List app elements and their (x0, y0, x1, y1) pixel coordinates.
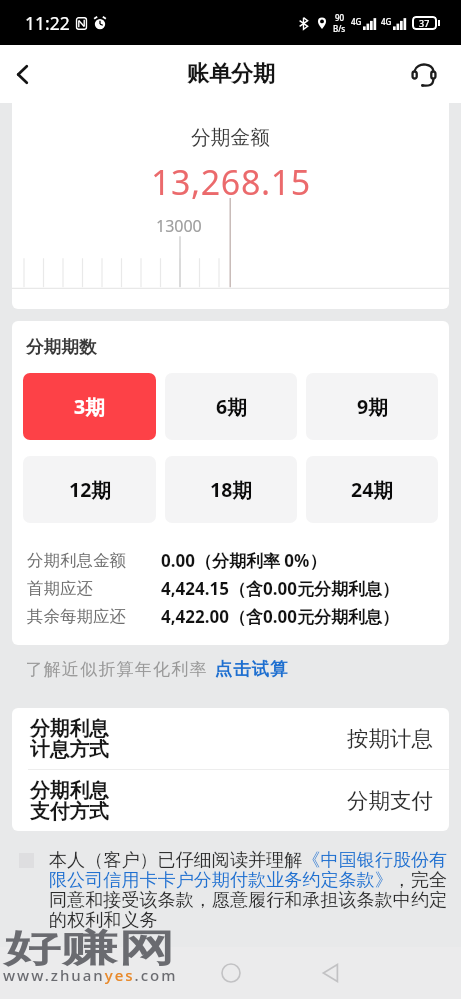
staticText: 了解近似折算年化利率 (25, 659, 207, 680)
button[interactable]: 6期 (165, 373, 297, 440)
button[interactable]: 9期 (306, 373, 438, 440)
button[interactable]: 24期 (306, 456, 438, 523)
staticText: 6期 (216, 393, 247, 420)
button[interactable]: 18期 (165, 456, 297, 523)
staticText: 分期支付 (347, 787, 433, 814)
button[interactable]: 12期 (23, 456, 156, 523)
staticText: 4G (381, 16, 392, 27)
button[interactable]: Home (208, 950, 254, 996)
staticText: 其余每期应还 (27, 606, 161, 627)
staticText: 0.00（分期利率 0%） (161, 549, 327, 572)
staticText: 4,422.00（含0.00元分期利息） (161, 605, 399, 628)
staticText: 90 (335, 12, 345, 23)
staticText: 首期应还 (27, 578, 161, 599)
staticText: 13000 (156, 215, 202, 237)
staticText: B/s (333, 23, 346, 34)
staticText: 分期金额 (191, 125, 270, 150)
staticText: 分期利息 计息方式 (30, 716, 109, 762)
staticText: 4,424.15（含0.00元分期利息） (161, 577, 399, 600)
staticText: 13,268.15 (151, 159, 311, 205)
staticText: 11:22 (25, 11, 70, 35)
staticText: 分期期数 (26, 336, 97, 358)
staticText: 37 (419, 17, 430, 29)
button[interactable]: 分期利息 计息方式 (30, 708, 433, 769)
staticText: 账单分期 (187, 60, 275, 88)
staticText: 按期计息 (347, 725, 433, 752)
staticText: www.zhuanyes.com (3, 965, 178, 985)
staticText: 24期 (351, 476, 393, 503)
button[interactable]: Back (0, 49, 44, 99)
staticText: 点击试算 (214, 658, 288, 680)
button[interactable]: 3期 (23, 373, 156, 440)
staticText: 分期利息 支付方式 (30, 778, 109, 824)
staticText: 本人（客户）已仔细阅读并理解《中国银行股份有限公司信用卡卡户分期付款业务约定条款… (49, 849, 461, 931)
button[interactable]: Customer service (399, 49, 449, 99)
staticText: 9期 (357, 393, 388, 420)
button[interactable]: 分期利息 支付方式 (30, 770, 433, 831)
staticText: 好赚网 (4, 925, 175, 972)
button[interactable]: 点击试算 (214, 658, 288, 680)
staticText: 分期利息金额 (27, 550, 161, 571)
staticText: 4G (351, 16, 362, 27)
staticText: 12期 (69, 476, 111, 503)
button[interactable]: Back (308, 950, 354, 996)
staticText: 3期 (74, 393, 105, 420)
staticText: 18期 (210, 476, 252, 503)
